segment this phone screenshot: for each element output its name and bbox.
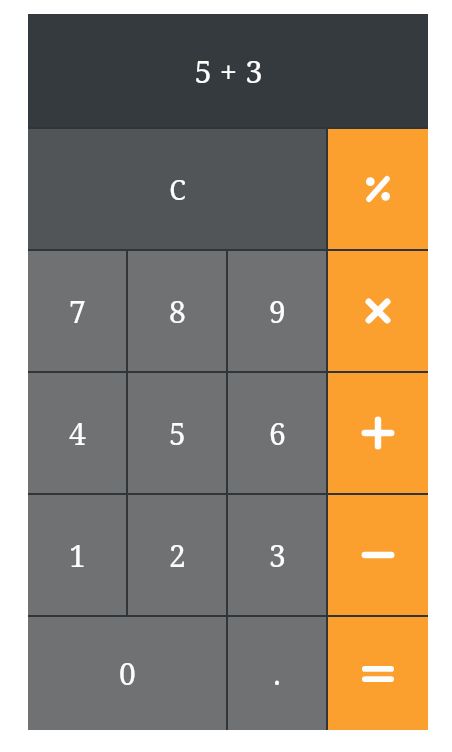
button[interactable]: Multiply [328,251,428,371]
staticText: 6 [269,413,286,454]
staticText: C [169,171,186,208]
button[interactable]: 3 [228,495,326,615]
button[interactable]: Equals [328,617,428,730]
staticText: 2 [169,535,186,576]
staticText: 1 [69,535,86,576]
staticText: 7 [69,291,86,332]
staticText: 4 [69,413,86,454]
button[interactable]: 4 [28,373,126,493]
button[interactable]: 8 [128,251,226,371]
button[interactable]: 0 [28,617,226,730]
staticText: 5 + 3 [194,50,263,92]
button[interactable]: 9 [228,251,326,371]
staticText: 8 [169,291,186,332]
staticText: 3 [269,535,286,576]
button[interactable]: 6 [228,373,326,493]
button[interactable]: 2 [128,495,226,615]
staticText: . [273,653,281,694]
button[interactable]: . [228,617,326,730]
staticText: 0 [119,653,136,694]
button[interactable]: 7 [28,251,126,371]
button[interactable]: 1 [28,495,126,615]
button[interactable]: C [28,129,326,249]
button[interactable]: Add [328,373,428,493]
button[interactable]: Subtract [328,495,428,615]
button[interactable]: Percent [328,129,428,249]
staticText: 5 [169,413,186,454]
staticText: 9 [269,291,286,332]
button[interactable]: 5 [128,373,226,493]
